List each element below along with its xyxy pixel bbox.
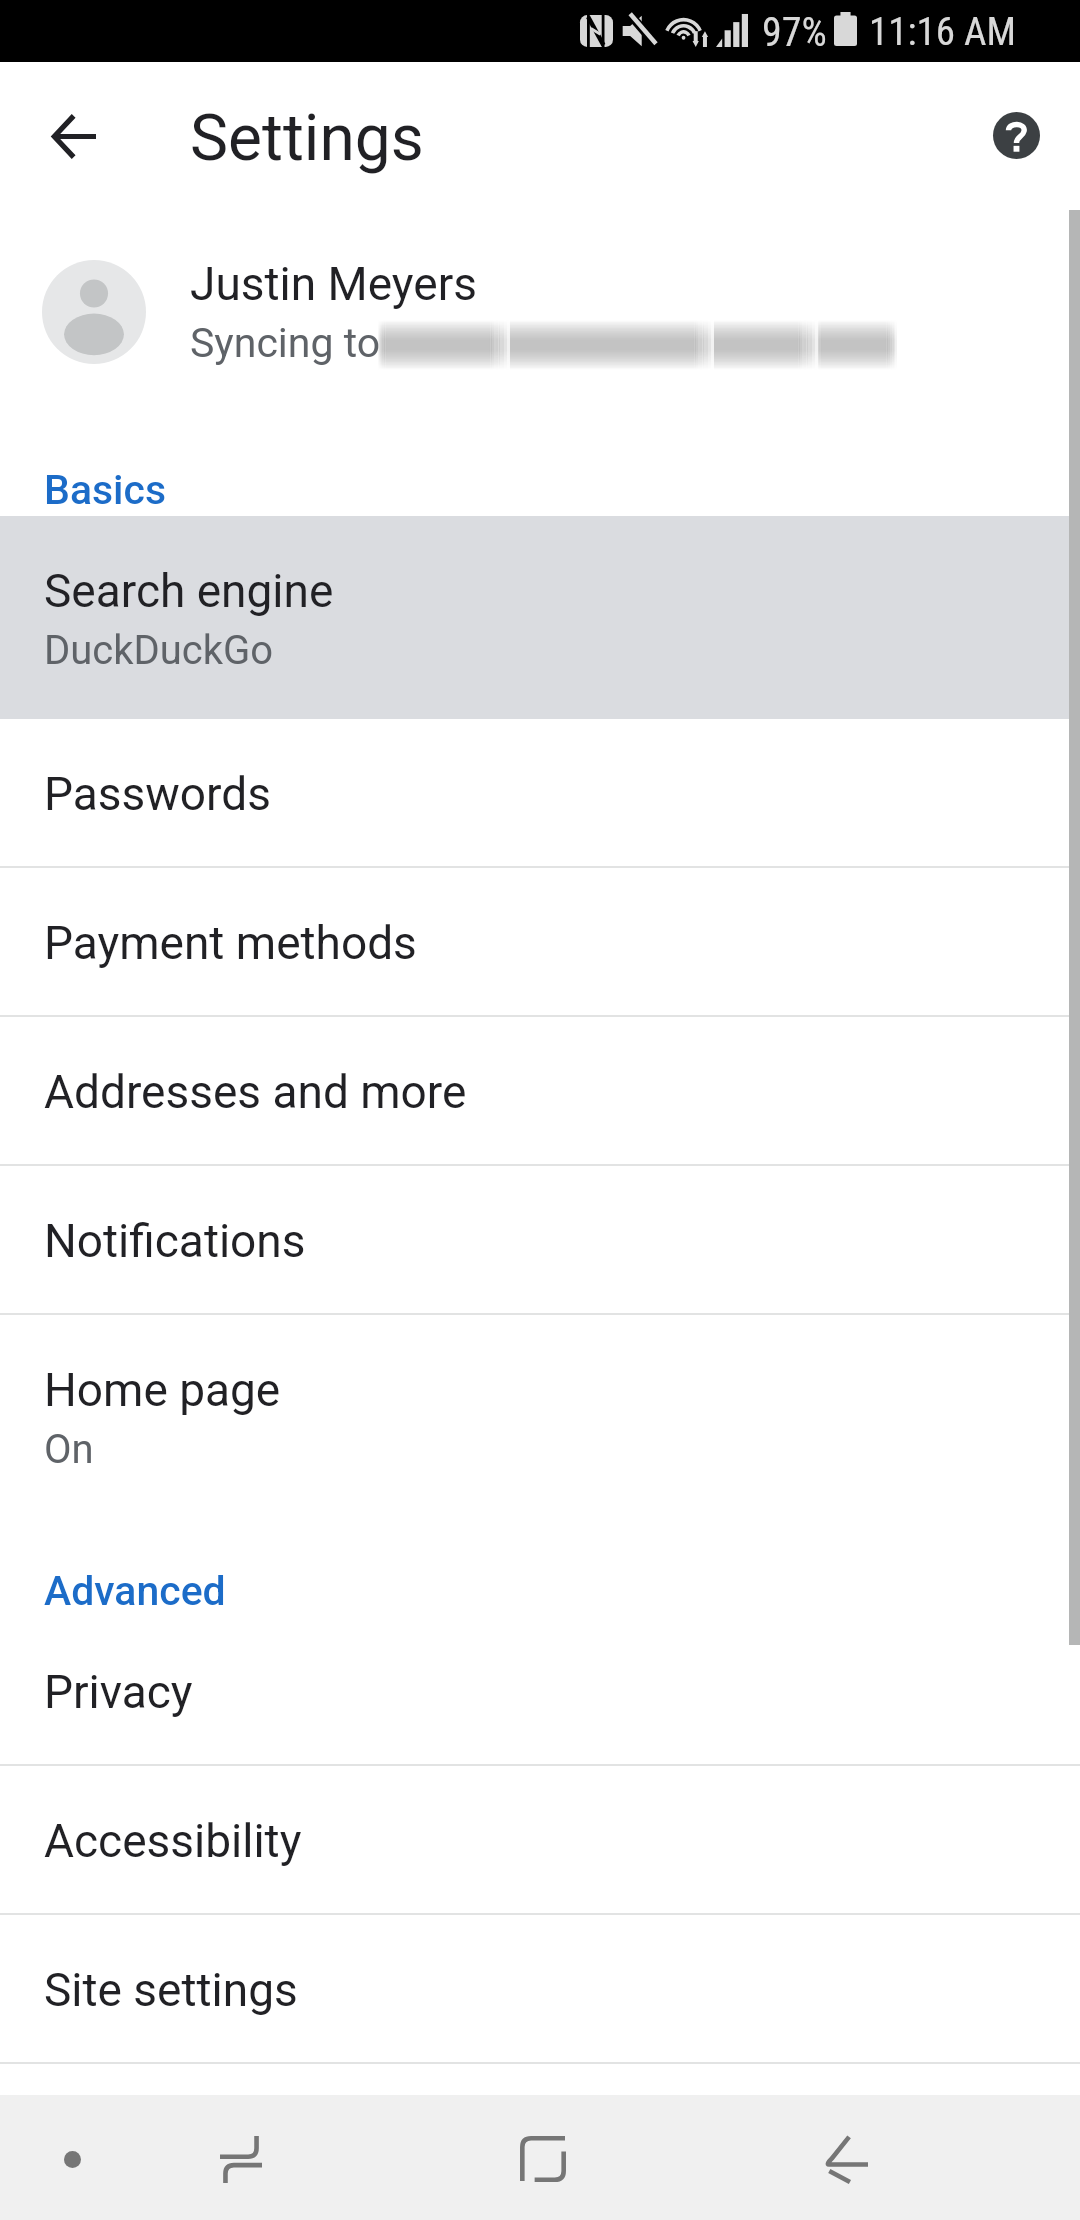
staticText: On [44,1426,94,1473]
button[interactable]: Show keyboard [12,2099,132,2219]
staticText: Basics [44,466,167,514]
button[interactable]: Addresses and more [0,1017,1080,1166]
staticText: Justin Meyers [190,257,477,311]
button[interactable]: Search engine [0,516,1080,719]
button[interactable]: Home [483,2099,603,2219]
button[interactable]: Justin Meyers [0,210,1080,452]
button[interactable]: Home page [0,1315,1080,1518]
staticText: Site settings [44,1963,298,2017]
button[interactable]: Passwords [0,719,1080,868]
staticText: 97% [762,9,827,56]
button[interactable]: Payment methods [0,868,1080,1017]
staticText: Accessibility [44,1814,302,1868]
staticText: Notifications [44,1214,306,1268]
button[interactable]: Accessibility [0,1766,1080,1915]
button[interactable]: Recent apps [181,2099,301,2219]
staticText: Settings [190,101,424,176]
staticText: Search engine [44,564,334,618]
button[interactable]: Navigate up [26,88,122,184]
button[interactable]: Site settings [0,1915,1080,2064]
button[interactable]: Notifications [0,1166,1080,1315]
staticText: Syncing to [190,319,381,367]
staticText: Addresses and more [44,1065,467,1119]
staticText: Home page [44,1363,281,1417]
button[interactable]: Help and feedback [970,89,1062,181]
staticText: Payment methods [44,916,417,970]
staticText: Advanced [44,1567,226,1615]
staticText: Passwords [44,767,271,821]
staticText: 11:16 AM [869,9,1017,55]
button[interactable]: Privacy [0,1617,1080,1766]
staticText: DuckDuckGo [44,627,274,674]
button[interactable]: Back [786,2099,906,2219]
staticText: Privacy [44,1665,193,1719]
